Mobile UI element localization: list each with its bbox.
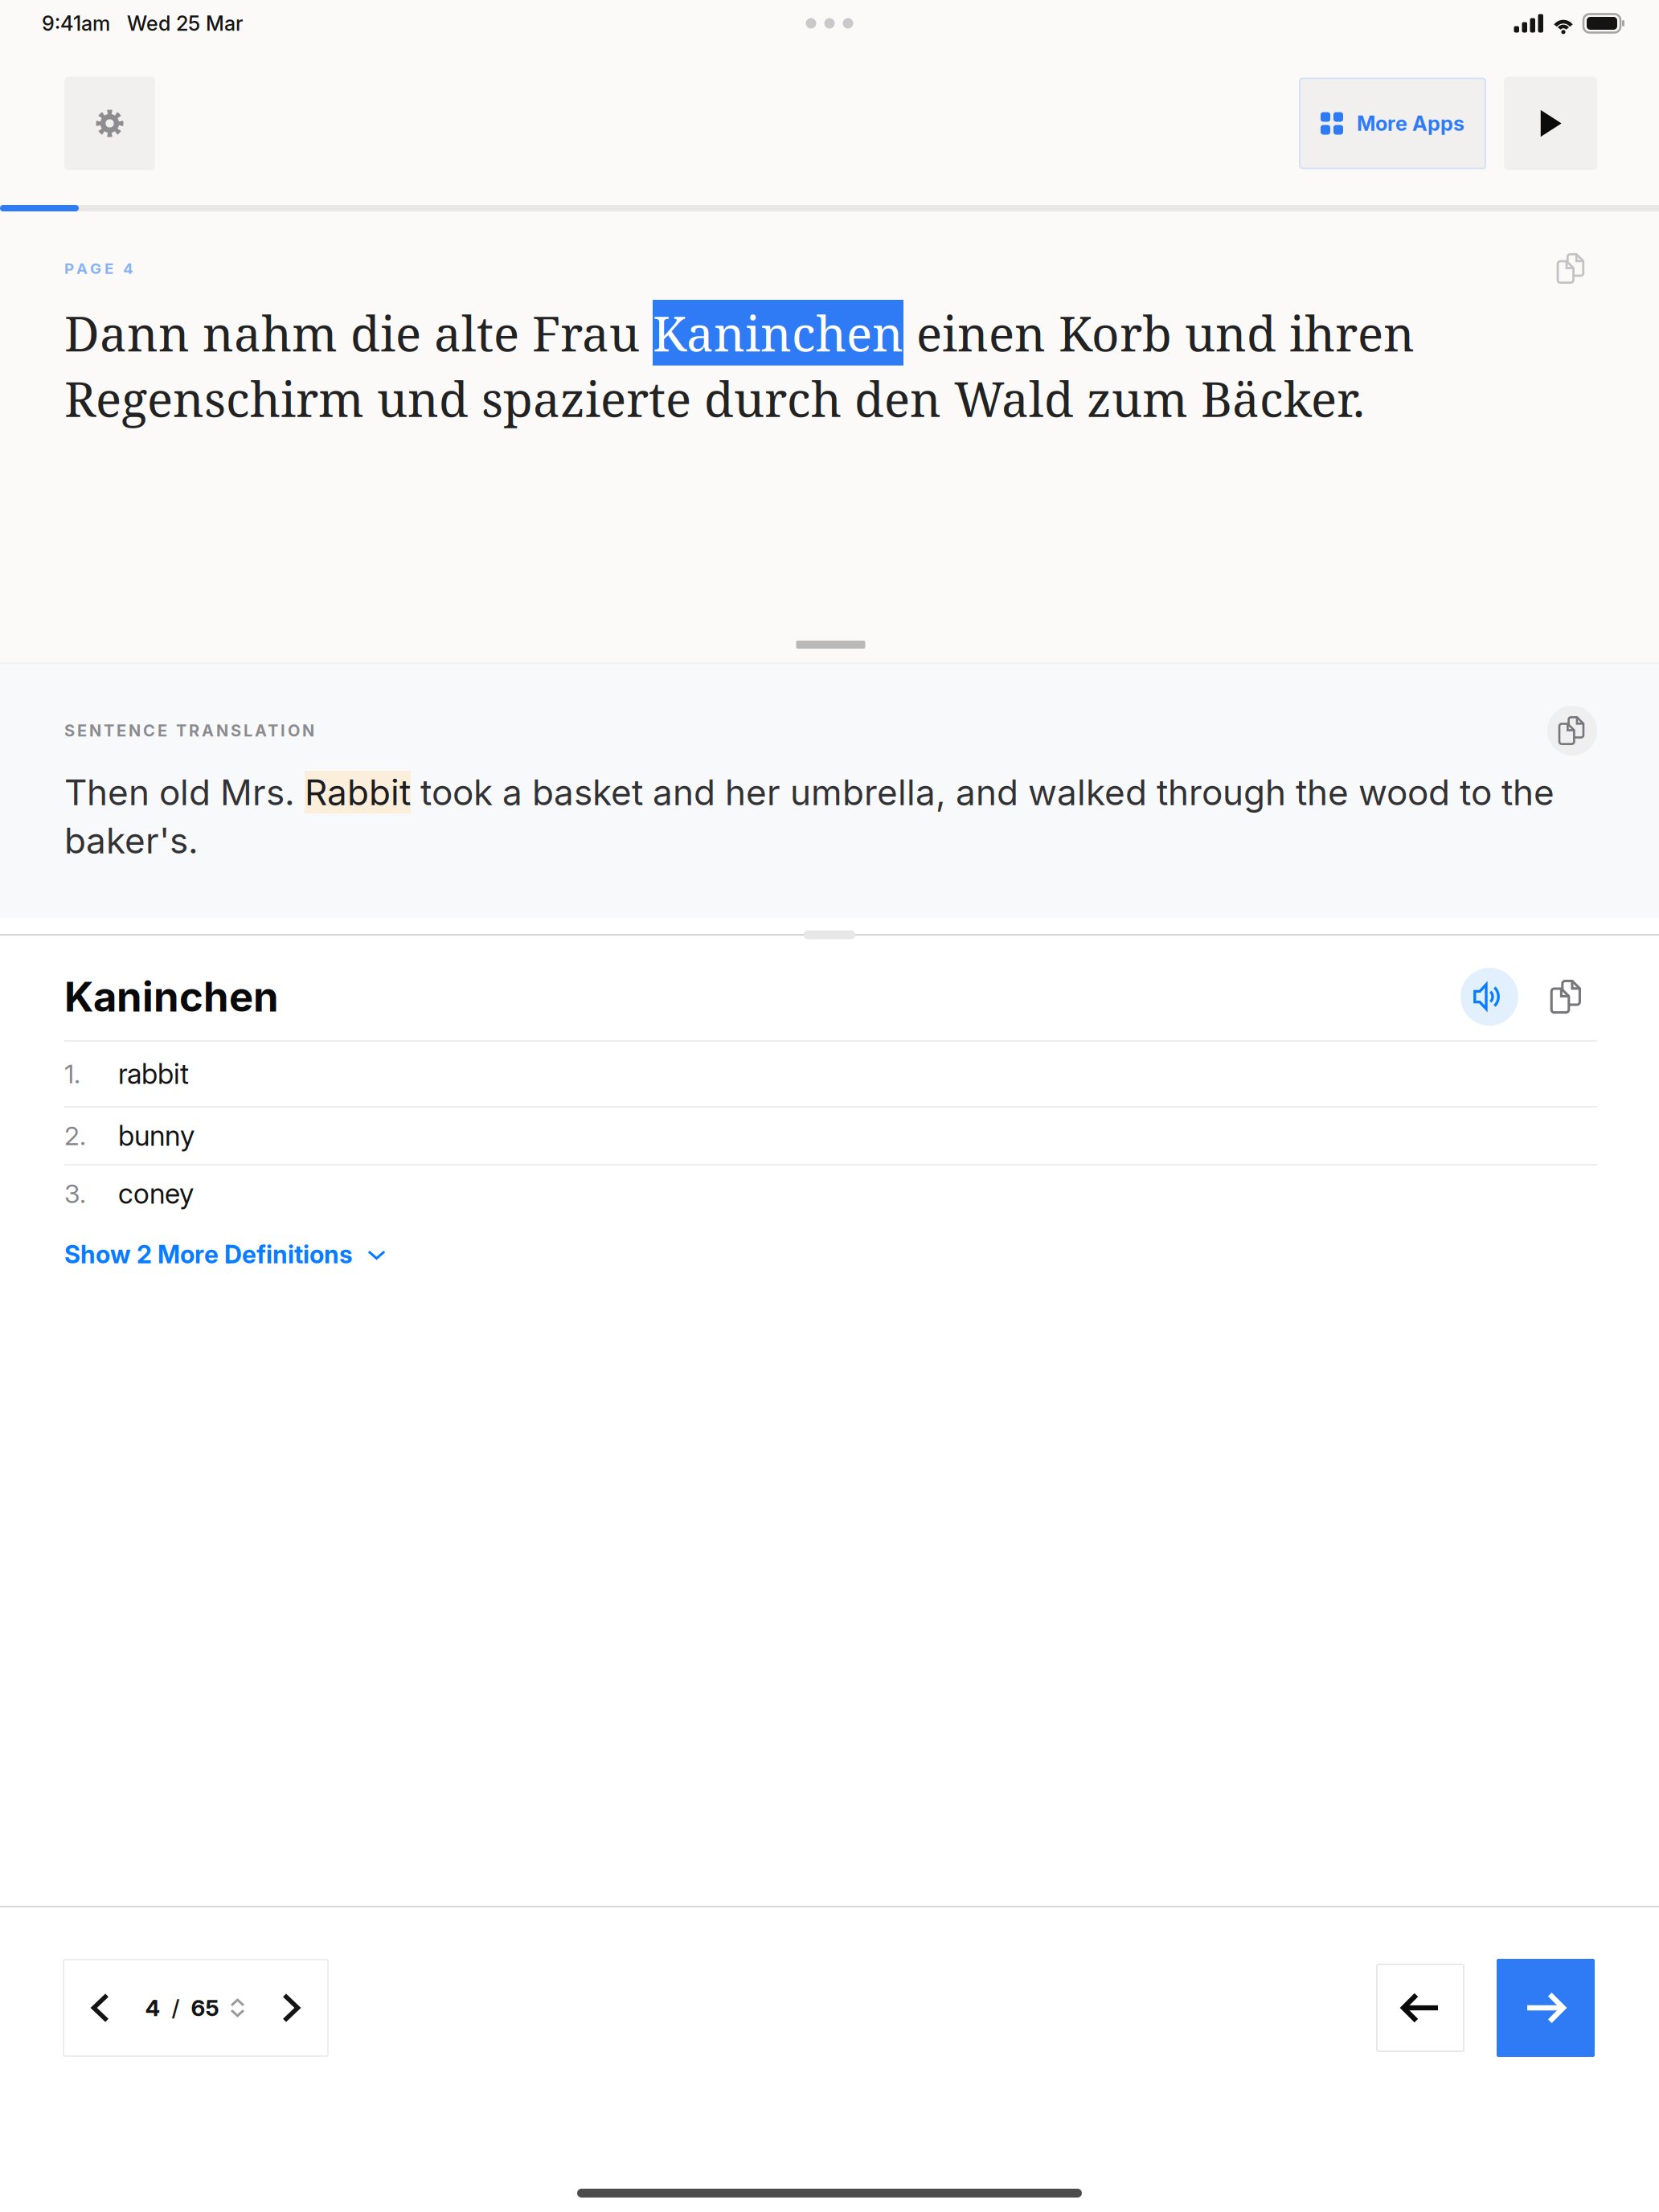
- button[interactable]: Pronounce: [1460, 968, 1518, 1026]
- staticText: 9:41am: [42, 11, 110, 36]
- staticText: 65: [191, 1994, 219, 2022]
- button[interactable]: Settings: [64, 77, 155, 170]
- staticText: 2.: [64, 1120, 86, 1151]
- button[interactable]: Previous page: [1377, 1964, 1464, 2051]
- staticText: SENTENCE TRANSLATION: [64, 721, 314, 740]
- button[interactable]: Copy translation: [1547, 706, 1597, 756]
- button[interactable]: Show 2 More Definitions: [64, 1222, 386, 1300]
- staticText: More Apps: [1357, 111, 1464, 136]
- button[interactable]: Play: [1504, 77, 1597, 170]
- button[interactable]: Copy sentence: [1557, 254, 1586, 283]
- staticText: Then old Mrs. Rabbit took a basket and h…: [64, 771, 1555, 862]
- button[interactable]: 4: [63, 1960, 328, 2056]
- staticText: Show 2 More Definitions: [64, 1239, 353, 1269]
- staticText: /: [160, 1994, 191, 2022]
- staticText: Kaninchen: [64, 972, 279, 1021]
- staticText: Wed 25 Mar: [110, 11, 243, 36]
- staticText: rabbit: [118, 1057, 189, 1091]
- button[interactable]: More Apps: [1300, 78, 1485, 168]
- staticText: 3.: [64, 1178, 86, 1209]
- staticText: 1.: [64, 1058, 80, 1089]
- staticText: PAGE 4: [64, 259, 133, 278]
- staticText: bunny: [118, 1119, 195, 1153]
- button[interactable]: Copy word: [1550, 981, 1583, 1013]
- staticText: Dann nahm die alte Frau Kaninchen einen …: [64, 300, 1415, 431]
- staticText: coney: [118, 1177, 194, 1210]
- button[interactable]: Next page: [1497, 1959, 1595, 2057]
- staticText: 4: [145, 1994, 160, 2022]
